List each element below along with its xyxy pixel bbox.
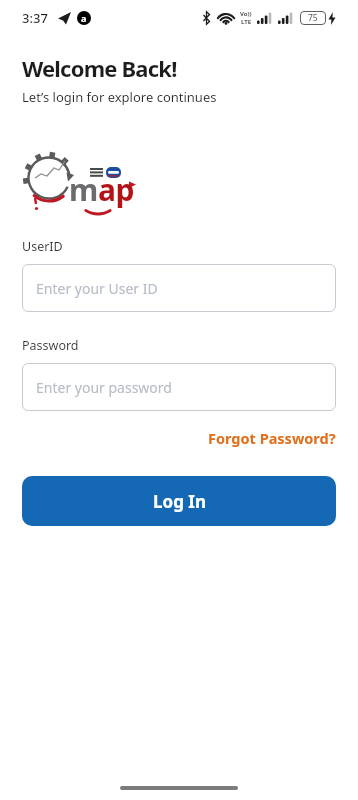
staticText: Welcome Back! — [22, 53, 177, 83]
staticText: Vo)) — [240, 10, 252, 18]
staticText: Password — [22, 337, 79, 354]
staticText: Let’s login for explore continues — [22, 88, 217, 106]
staticText: Enter your User ID — [36, 279, 158, 298]
staticText: 3:37 — [22, 9, 48, 27]
staticText: a — [81, 12, 87, 24]
staticText: ap — [98, 169, 134, 210]
staticText: Enter your password — [36, 378, 172, 397]
button[interactable]: Enter your User ID — [22, 264, 336, 312]
staticText: UserID — [22, 238, 63, 255]
button[interactable]: Log In — [22, 476, 336, 526]
staticText: LTE — [241, 18, 252, 26]
staticText: m — [69, 169, 98, 210]
staticText: Log In — [153, 490, 206, 513]
button[interactable]: Enter your password — [22, 363, 336, 411]
staticText: 75 — [308, 12, 318, 24]
button[interactable]: Forgot Password? — [208, 428, 336, 448]
